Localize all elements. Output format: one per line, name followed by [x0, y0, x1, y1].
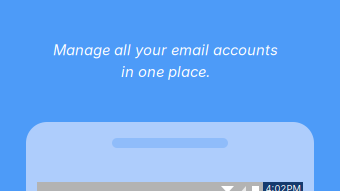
button[interactable]: 4:02PM: [0, 0, 340, 191]
staticText: Manage all your email accounts: [53, 41, 278, 59]
staticText: 4:02PM: [265, 183, 300, 191]
staticText: in one place.: [121, 63, 210, 80]
